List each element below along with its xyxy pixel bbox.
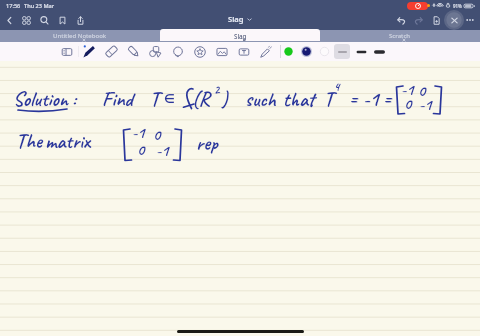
staticText: -1 (401, 80, 414, 100)
button[interactable]: Scratch (320, 30, 480, 42)
button[interactable]: Slag (160, 29, 320, 41)
staticText: = (383, 87, 392, 112)
staticText: Solution (13, 87, 68, 112)
staticText: -1 (132, 123, 145, 143)
button[interactable]: Lasso (167, 42, 189, 61)
button[interactable]: Sidebar (56, 42, 78, 61)
button[interactable]: Bookmark (53, 11, 71, 29)
button[interactable]: Share (71, 11, 89, 29)
button[interactable]: Undo (392, 11, 410, 29)
button[interactable]: Close (445, 11, 463, 29)
button[interactable]: Pages (17, 11, 35, 29)
staticText: Find (102, 87, 133, 112)
staticText: -1 (156, 141, 169, 161)
staticText: Slag (228, 14, 244, 24)
staticText: that (283, 87, 315, 112)
button[interactable]: Colour (279, 42, 297, 61)
staticText: Slag (234, 32, 247, 40)
staticText: ) (221, 87, 228, 112)
button[interactable]: Search (35, 11, 53, 29)
button[interactable]: Stroke thickness (370, 42, 388, 61)
button[interactable]: Highlighter (122, 42, 144, 61)
staticText: The (16, 129, 42, 154)
button[interactable]: Stroke thickness (352, 42, 370, 61)
staticText: 17:56 (6, 2, 21, 10)
staticText: 0 (418, 81, 426, 101)
staticText: -1 (363, 87, 379, 112)
staticText: = (349, 87, 358, 112)
staticText: 0 (153, 125, 161, 145)
staticText: 0 (404, 94, 412, 114)
staticText: Scratch (389, 32, 411, 40)
button[interactable]: Untitled Notebook (0, 30, 160, 42)
staticText: Thu 23 Mar (24, 2, 55, 10)
button[interactable]: Redo (409, 11, 427, 29)
button[interactable]: Sticker (189, 42, 211, 61)
staticText: rep (196, 131, 218, 156)
staticText: -1 (419, 95, 432, 115)
staticText: : (72, 87, 76, 112)
button[interactable]: Slag (224, 12, 256, 26)
button[interactable]: Eraser (100, 42, 122, 61)
button[interactable]: Colour (315, 42, 333, 61)
staticText: T (150, 87, 160, 112)
button[interactable]: Image (211, 42, 233, 61)
button[interactable]: Text box (233, 42, 255, 61)
staticText: 91% (453, 3, 462, 9)
staticText: T (324, 87, 334, 112)
staticText: (R (192, 87, 210, 112)
button[interactable]: Back (0, 11, 18, 29)
button[interactable]: Shapes (144, 42, 166, 61)
button[interactable]: More (461, 11, 479, 29)
staticText: Untitled Notebook (53, 32, 107, 40)
staticText: 4 (334, 79, 340, 94)
button[interactable]: New page (427, 11, 445, 29)
staticText: ∈ (164, 92, 175, 106)
button[interactable]: Pen (78, 42, 100, 61)
button[interactable]: Laser pointer (255, 42, 277, 61)
staticText: 0 (137, 140, 145, 160)
staticText: 2 (214, 82, 220, 97)
button[interactable]: Stroke thickness (333, 42, 351, 61)
staticText: such (245, 87, 276, 112)
button[interactable]: Colour (297, 42, 315, 61)
staticText: matrix (45, 129, 90, 154)
